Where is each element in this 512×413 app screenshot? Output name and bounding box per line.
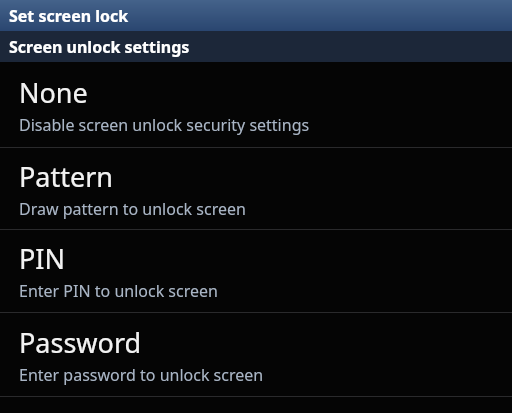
staticText: Enter password to unlock screen (19, 364, 264, 386)
button[interactable]: Password (0, 313, 512, 396)
staticText: Pattern (19, 158, 114, 195)
button[interactable]: Pattern (0, 148, 512, 229)
button[interactable]: None (0, 62, 512, 147)
button[interactable]: PIN (0, 230, 512, 312)
staticText: Draw pattern to unlock screen (19, 198, 246, 220)
staticText: Disable screen unlock security settings (19, 114, 310, 136)
staticText: Password (19, 324, 142, 361)
staticText: Set screen lock (9, 5, 129, 27)
staticText: Enter PIN to unlock screen (19, 280, 218, 302)
staticText: None (19, 74, 88, 111)
staticText: PIN (19, 240, 66, 277)
staticText: Screen unlock settings (9, 36, 190, 58)
